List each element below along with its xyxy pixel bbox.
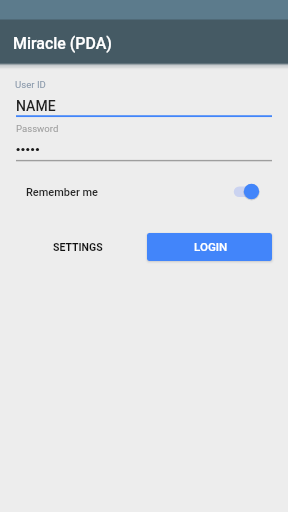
button[interactable]: Password (16, 118, 272, 161)
staticText: User ID (15, 79, 46, 90)
staticText: Miracle (PDA) (13, 34, 112, 53)
button[interactable]: User ID (16, 74, 272, 117)
button[interactable]: LOGIN (147, 233, 272, 261)
staticText: NAME (16, 98, 56, 114)
staticText: SETTINGS (53, 241, 103, 253)
staticText: LOGIN (194, 240, 228, 254)
staticText: Password (16, 123, 59, 134)
other: Remember me (232, 182, 276, 202)
staticText: Remember me (26, 186, 99, 199)
button[interactable]: Remember me (16, 178, 272, 206)
button[interactable]: SETTINGS (38, 233, 118, 261)
